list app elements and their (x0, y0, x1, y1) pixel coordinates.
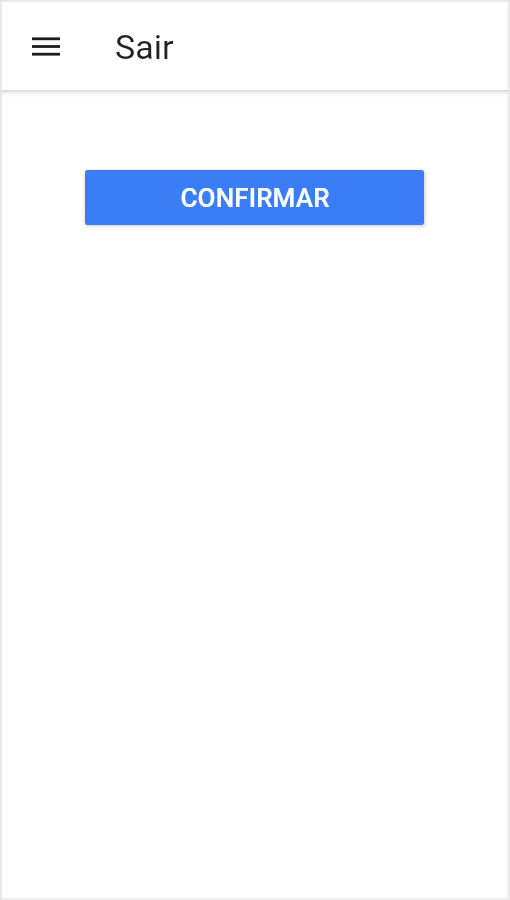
button[interactable]: CONFIRMAR (85, 170, 424, 225)
button[interactable]: Open navigation menu (22, 22, 70, 70)
staticText: CONFIRMAR (180, 183, 330, 213)
staticText: Sair (115, 27, 174, 67)
